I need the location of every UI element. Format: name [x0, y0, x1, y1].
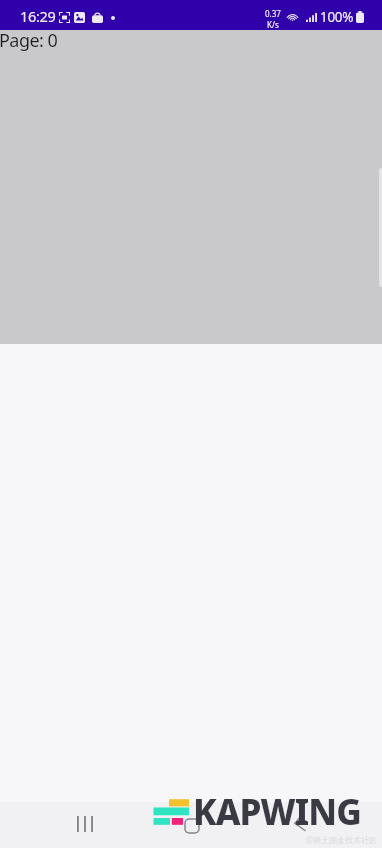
- button[interactable]: Back: [279, 813, 322, 833]
- staticText: 100%: [320, 8, 354, 26]
- button[interactable]: Page: 0: [0, 30, 382, 344]
- staticText: 16:29: [20, 6, 56, 26]
- button[interactable]: Recent apps: [63, 802, 106, 848]
- staticText: KAPWING: [193, 788, 361, 836]
- button[interactable]: Home: [170, 802, 213, 848]
- staticText: K/s: [267, 19, 279, 30]
- staticText: @稀土掘金技术社区: [306, 834, 378, 845]
- staticText: 0.37: [265, 8, 281, 19]
- staticText: Page: 0: [0, 28, 58, 53]
